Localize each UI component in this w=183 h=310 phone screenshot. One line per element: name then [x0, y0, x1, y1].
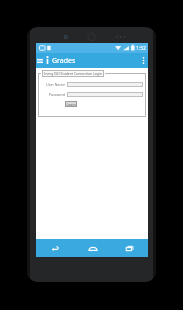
staticText: Grades: [52, 56, 76, 66]
button[interactable]: Home: [74, 239, 111, 257]
staticText: 1:52: [136, 45, 146, 52]
button[interactable]: Login: [65, 101, 77, 107]
button[interactable]: More options: [138, 53, 148, 68]
staticText: Irving ISD Student Connection Login: [44, 71, 102, 76]
staticText: Login: [66, 102, 76, 107]
staticText: Password: [48, 92, 65, 97]
button[interactable]: Back: [36, 239, 74, 257]
staticText: User Name: [46, 82, 65, 87]
button[interactable]: [67, 92, 143, 97]
button[interactable]: [67, 82, 143, 87]
button[interactable]: Recent apps: [111, 239, 148, 257]
button[interactable]: Irving ISD Student Connection Login: [44, 71, 102, 76]
button[interactable]: Open navigation drawer: [36, 53, 44, 68]
